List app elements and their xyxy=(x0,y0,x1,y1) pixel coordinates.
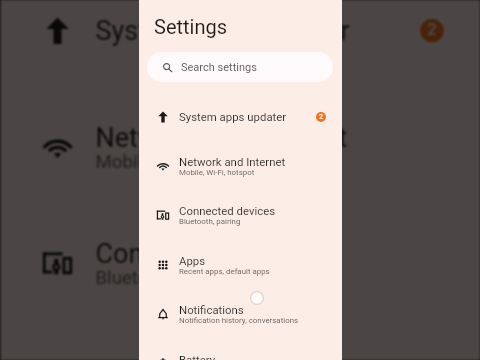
staticText: Apps xyxy=(95,355,159,360)
staticText: Recent apps, default apps xyxy=(179,267,270,276)
button[interactable]: Notifications xyxy=(139,289,342,338)
staticText: System apps updater xyxy=(95,14,351,45)
other: 2 pending updates xyxy=(316,112,326,122)
button[interactable]: Network and Internet xyxy=(139,141,342,190)
staticText: 2 xyxy=(427,21,437,40)
button[interactable]: Connected devices xyxy=(139,190,342,239)
staticText: Network and Internet xyxy=(95,121,349,152)
staticText: Mobile, Wi-Fi, hotspot xyxy=(179,168,255,177)
staticText: Bluetooth, pairing xyxy=(95,268,242,289)
staticText: Notifications xyxy=(179,303,244,316)
staticText: Network and Internet xyxy=(179,155,286,168)
button[interactable]: System apps updater xyxy=(139,92,342,141)
button[interactable]: Connected devices xyxy=(1,204,480,320)
staticText: System apps updater xyxy=(179,110,287,123)
button[interactable]: Battery xyxy=(139,339,342,360)
staticText: 2 xyxy=(319,113,323,121)
staticText: Apps xyxy=(179,254,206,267)
staticText: Battery xyxy=(179,353,216,360)
staticText: Mobile, Wi-Fi, hotspot xyxy=(95,152,275,173)
button[interactable]: Search settings xyxy=(147,52,333,82)
staticText: Settings xyxy=(154,15,228,38)
button[interactable]: Apps xyxy=(139,240,342,289)
staticText: Notification history, conversations xyxy=(179,316,299,325)
staticText: Connected devices xyxy=(179,204,276,217)
button[interactable]: Network and Internet xyxy=(1,88,480,204)
staticText: Bluetooth, pairing xyxy=(179,217,241,226)
staticText: Connected devices xyxy=(95,237,325,268)
staticText: Search settings xyxy=(181,61,257,74)
button[interactable]: System apps updater xyxy=(1,0,480,87)
other: 2 pending updates xyxy=(420,19,444,42)
button[interactable]: Apps xyxy=(1,322,480,360)
